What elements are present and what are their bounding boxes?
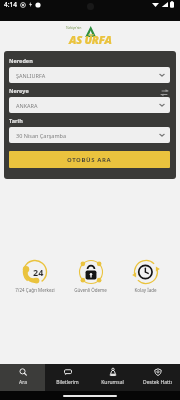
staticText: Ara: [19, 379, 27, 386]
staticText: Türkiye'nin: [66, 26, 82, 30]
staticText: Kolay İade: [134, 287, 157, 293]
button[interactable]: 24: [7, 259, 62, 293]
staticText: ANKARA: [16, 102, 38, 109]
button[interactable]: 30 Nisan Çarşamba: [9, 127, 170, 143]
button[interactable]: ANKARA: [9, 97, 170, 113]
staticText: 4:14: [4, 0, 17, 9]
button[interactable]: Swap direction: [159, 87, 170, 98]
staticText: Destek Hattı: [143, 379, 172, 386]
staticText: 24: [33, 266, 44, 278]
button[interactable]: Güvenli Ödeme: [63, 259, 118, 293]
button[interactable]: Biletlerim: [45, 364, 90, 391]
staticText: Tarih: [9, 117, 23, 124]
staticText: ŞANLIURFA: [16, 72, 46, 79]
button[interactable]: Destek Hattı: [135, 364, 180, 391]
staticText: Nereden: [9, 57, 33, 64]
button[interactable]: Kurumsal: [90, 364, 135, 391]
staticText: Kurumsal: [101, 379, 124, 386]
button[interactable]: OTOBÜS ARA: [9, 151, 170, 168]
staticText: 7/24 Çağrı Merkezi: [15, 287, 55, 293]
staticText: Biletlerim: [56, 379, 79, 386]
staticText: 30 Nisan Çarşamba: [16, 132, 67, 139]
staticText: AS URFA: [69, 32, 112, 47]
staticText: OTOBÜS ARA: [67, 156, 112, 164]
staticText: Nereye: [9, 87, 29, 94]
button[interactable]: Kolay İade: [118, 259, 173, 293]
staticText: Güvenli Ödeme: [74, 287, 107, 293]
button[interactable]: Ara: [0, 364, 45, 391]
button[interactable]: ŞANLIURFA: [9, 67, 170, 83]
